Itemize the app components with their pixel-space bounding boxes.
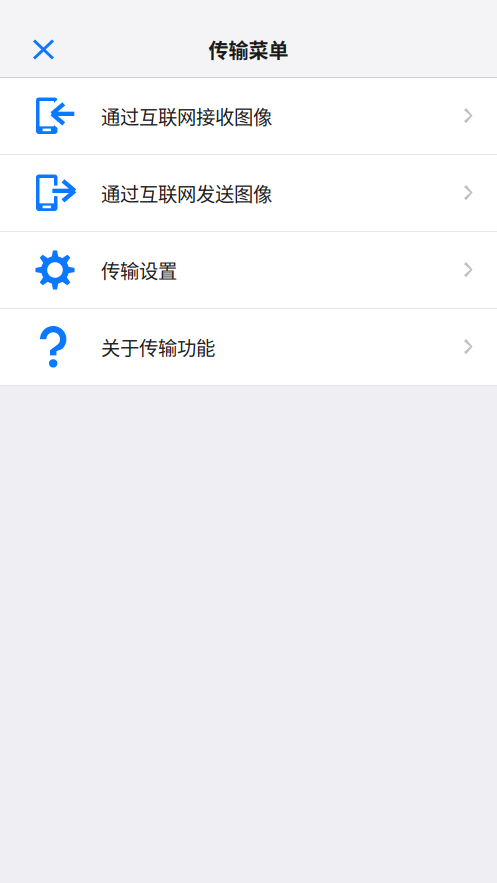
button[interactable]: 通过互联网接收图像 [0, 78, 497, 154]
staticText: 传输设置 [101, 256, 177, 284]
button[interactable]: 通过互联网发送图像 [0, 155, 497, 231]
button[interactable]: Close [0, 27, 67, 71]
button[interactable]: 传输设置 [0, 232, 497, 308]
staticText: 传输菜单 [208, 35, 288, 64]
staticText: 通过互联网接收图像 [101, 102, 272, 130]
button[interactable]: 关于传输功能 [0, 309, 497, 385]
staticText: 通过互联网发送图像 [101, 179, 272, 207]
staticText: 关于传输功能 [101, 333, 215, 361]
